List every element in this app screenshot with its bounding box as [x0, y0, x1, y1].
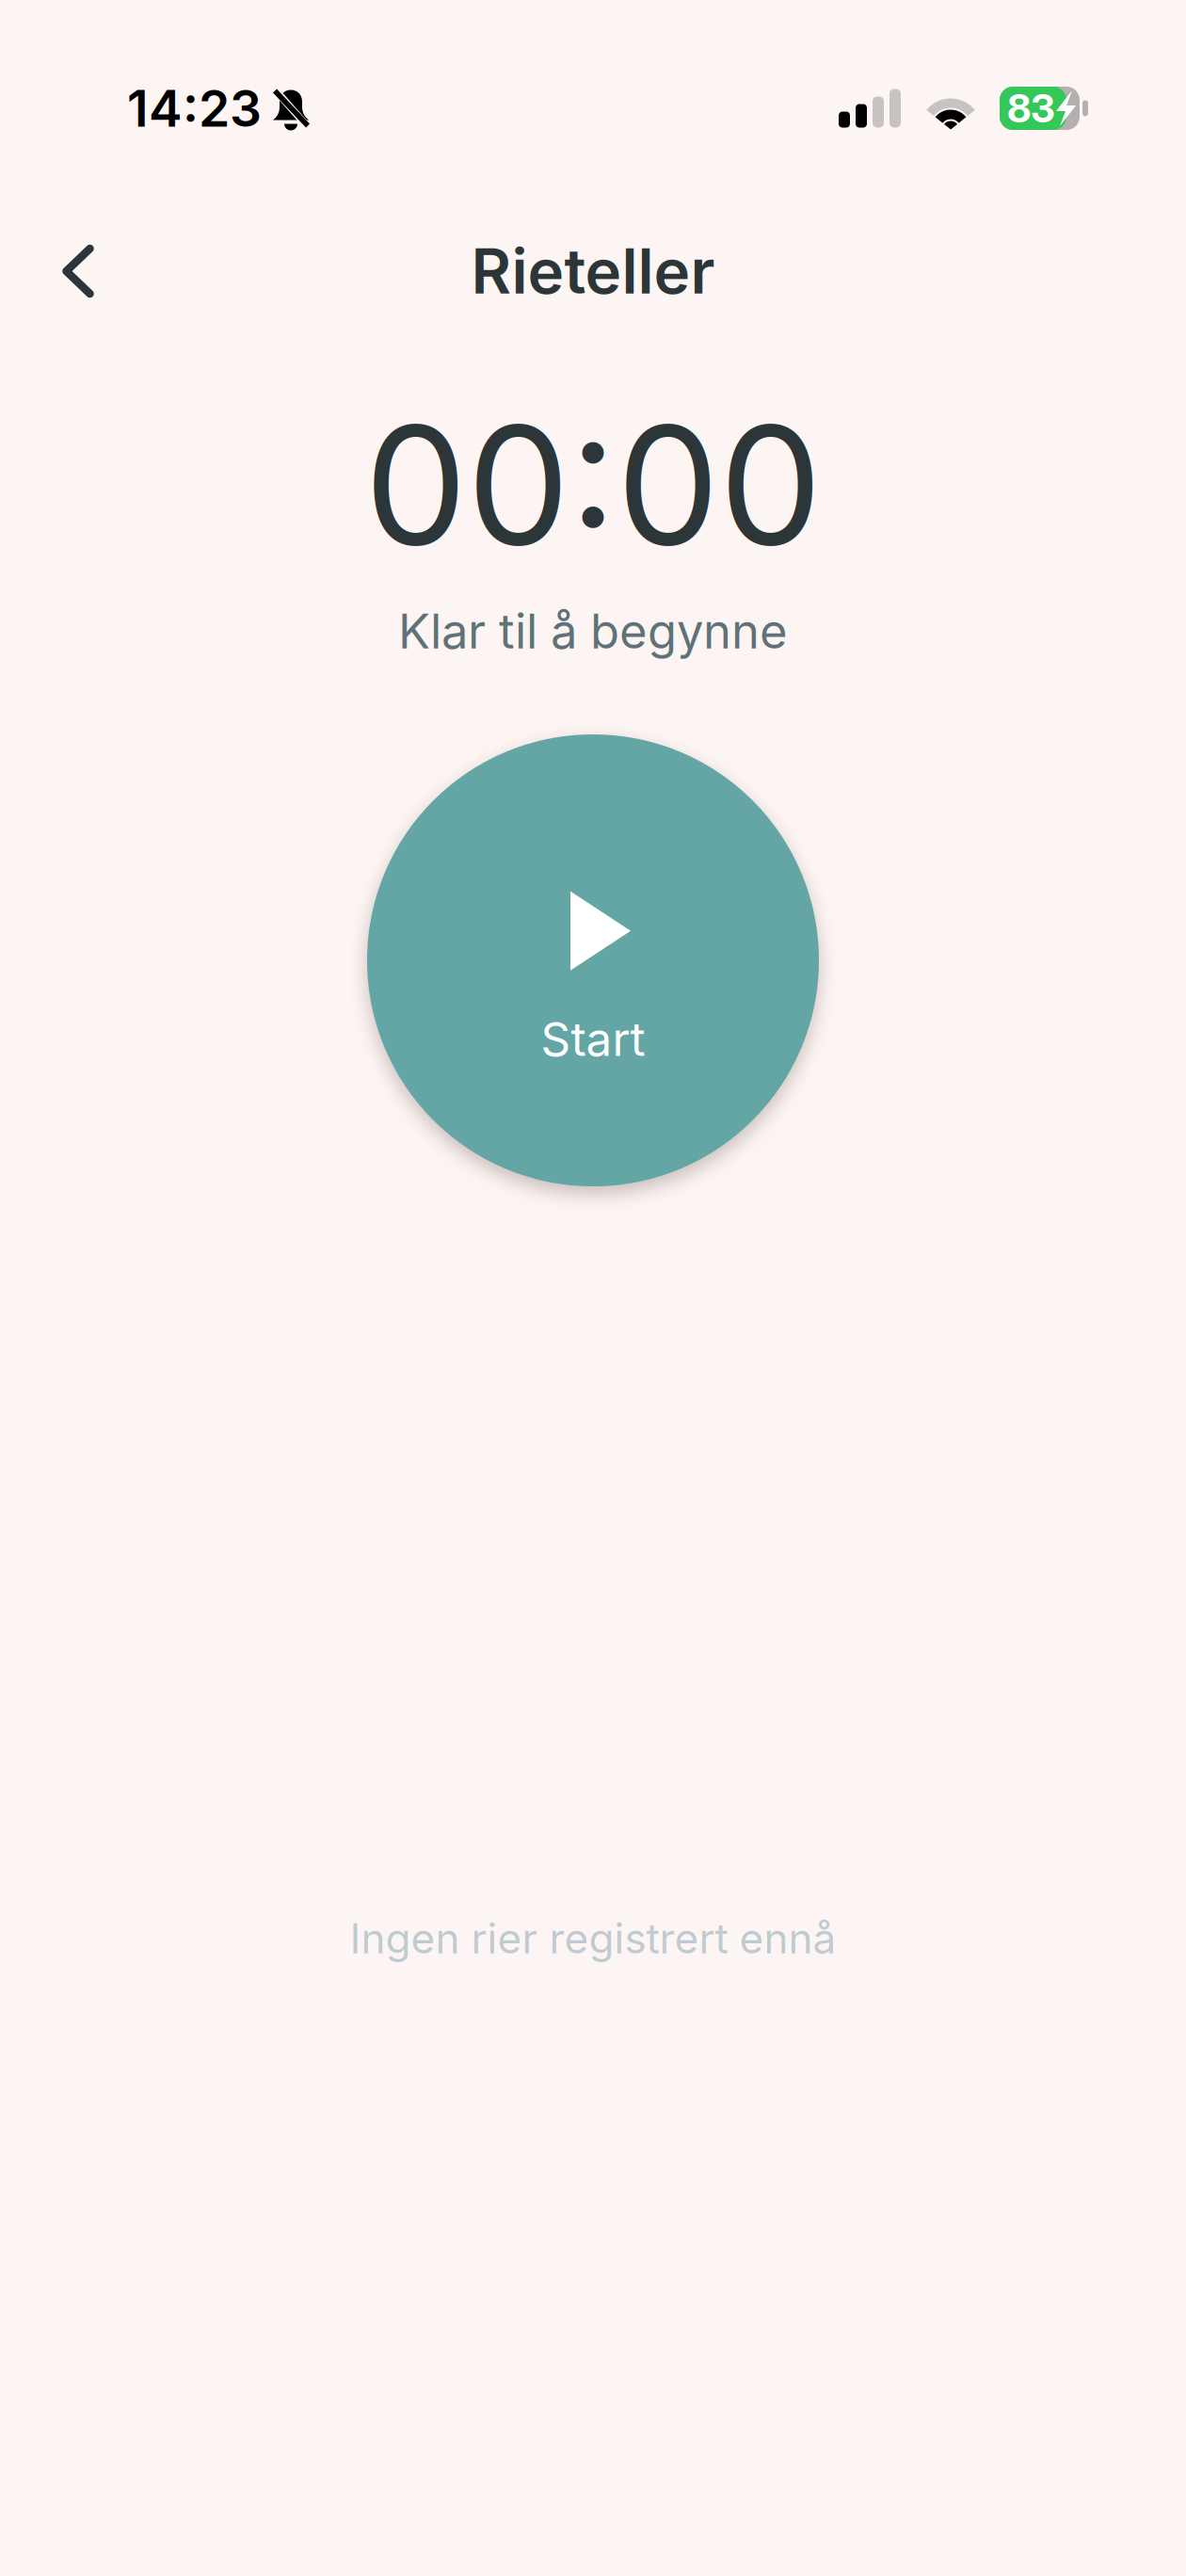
- button[interactable]: Start: [367, 734, 819, 1186]
- staticText: Rieteller: [471, 234, 715, 308]
- button[interactable]: Back: [36, 228, 120, 314]
- staticText: 83: [1007, 85, 1055, 132]
- staticText: 00:00: [364, 386, 822, 583]
- staticText: Klar til å begynne: [398, 602, 788, 660]
- staticText: Start: [541, 1011, 645, 1067]
- staticText: 14:23: [127, 78, 262, 139]
- staticText: Ingen rier registrert ennå: [350, 1913, 836, 1963]
